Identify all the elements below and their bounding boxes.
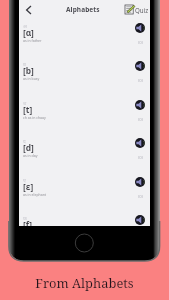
- staticText: (0): [138, 194, 143, 200]
- staticText: द: [23, 138, 26, 145]
- button[interactable]: द: [19, 137, 150, 175]
- staticText: फ: [23, 215, 27, 222]
- staticText: [t]: [23, 104, 33, 115]
- staticText: (0): [138, 117, 143, 123]
- button[interactable]: Play sound: [135, 177, 145, 187]
- staticText: (0): [138, 40, 143, 46]
- button[interactable]: Play sound: [135, 138, 145, 148]
- staticText: ब: [23, 61, 26, 68]
- staticText: Quiz: [135, 6, 149, 14]
- staticText: [b]: [23, 65, 34, 76]
- button[interactable]: Play sound: [135, 100, 145, 110]
- button[interactable]: ब: [19, 60, 150, 98]
- staticText: Alphabets: [66, 5, 100, 14]
- staticText: ए: [23, 177, 26, 184]
- button[interactable]: Play sound: [135, 23, 145, 33]
- staticText: [ɛ]: [23, 181, 34, 192]
- staticText: [f]: [23, 219, 33, 226]
- button[interactable]: फ: [19, 214, 150, 226]
- staticText: as in father: [23, 38, 42, 43]
- button[interactable]: च: [19, 99, 150, 137]
- staticText: (0): [138, 78, 143, 84]
- staticText: From Alphabets: [35, 274, 134, 292]
- button[interactable]: Play sound: [135, 61, 145, 71]
- staticText: च: [23, 100, 27, 107]
- staticText: अ: [23, 23, 27, 30]
- button[interactable]: Quiz: [125, 5, 149, 14]
- button[interactable]: Back: [20, 2, 36, 18]
- staticText: as in day: [23, 153, 38, 158]
- button[interactable]: ए: [19, 176, 150, 214]
- staticText: as in elephant: [23, 192, 47, 197]
- button[interactable]: Play sound: [135, 215, 145, 225]
- staticText: (0): [138, 155, 143, 161]
- staticText: as in busy: [23, 76, 40, 81]
- staticText: [ɑ]: [23, 27, 34, 38]
- staticText: [d]: [23, 142, 34, 153]
- staticText: ch as in chaay: [23, 115, 46, 120]
- button[interactable]: अ: [19, 22, 150, 60]
